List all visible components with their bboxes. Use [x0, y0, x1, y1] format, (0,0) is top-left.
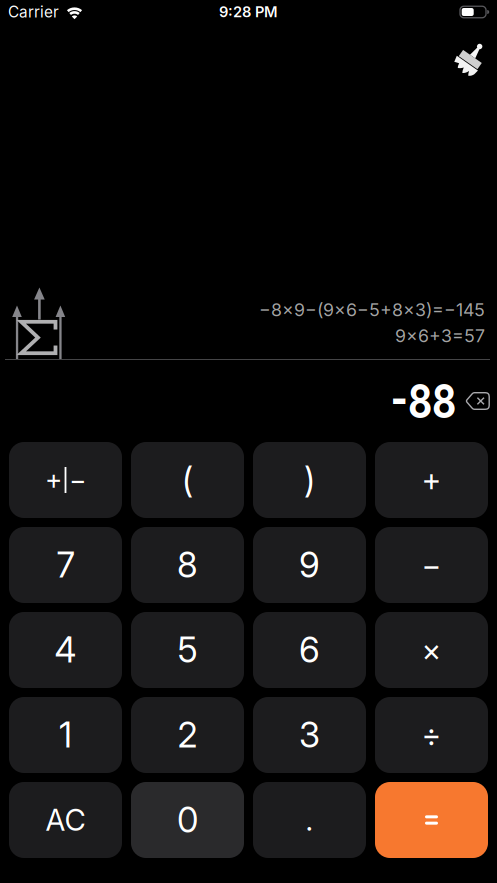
button[interactable]: 4 — [9, 612, 122, 688]
staticText: Carrier — [8, 3, 59, 21]
button[interactable]: × — [375, 612, 488, 688]
button[interactable]: Clear history — [453, 37, 489, 80]
staticText: 7 — [56, 544, 74, 586]
button[interactable]: . — [253, 782, 366, 858]
button[interactable]: 3 — [253, 697, 366, 773]
staticText: 5 — [177, 629, 197, 671]
staticText: ) — [304, 459, 315, 501]
button[interactable]: ) — [253, 442, 366, 518]
button[interactable]: 8 — [131, 527, 244, 603]
staticText: 1 — [59, 714, 72, 756]
button[interactable]: + — [9, 442, 122, 518]
button[interactable]: ( — [131, 442, 244, 518]
staticText: + — [421, 461, 441, 498]
button[interactable]: AC — [9, 782, 122, 858]
staticText: ( — [182, 459, 193, 501]
staticText: + — [45, 464, 62, 496]
button[interactable]: History summary — [8, 286, 70, 359]
button[interactable]: Delete — [466, 392, 490, 410]
staticText: 9×6+3=57 — [395, 325, 485, 346]
button[interactable]: 2 — [131, 697, 244, 773]
staticText: − — [421, 546, 441, 583]
staticText: . — [305, 802, 313, 838]
staticText: 6 — [299, 629, 320, 671]
button[interactable]: 9 — [253, 527, 366, 603]
staticText: 9:28 PM — [219, 3, 278, 21]
staticText: 0 — [177, 799, 198, 841]
button[interactable]: − — [375, 527, 488, 603]
staticText: -88 — [374, 373, 456, 429]
staticText: −8×9−(9×6−5+8×3)=−145 — [259, 299, 485, 321]
button[interactable]: 5 — [131, 612, 244, 688]
staticText: × — [421, 631, 441, 668]
button[interactable]: 6 — [253, 612, 366, 688]
staticText: ÷ — [421, 716, 441, 753]
button[interactable]: 0 — [131, 782, 244, 858]
button[interactable]: 7 — [9, 527, 122, 603]
button[interactable] — [375, 782, 488, 858]
staticText: AC — [45, 802, 85, 838]
button[interactable]: ÷ — [375, 697, 488, 773]
button[interactable]: + — [375, 442, 488, 518]
staticText: 3 — [299, 714, 320, 756]
button[interactable]: 1 — [9, 697, 122, 773]
staticText: 9 — [299, 544, 320, 586]
staticText: 4 — [54, 629, 76, 671]
staticText: − — [69, 464, 86, 496]
staticText: 2 — [177, 714, 197, 756]
staticText: 8 — [177, 544, 198, 586]
